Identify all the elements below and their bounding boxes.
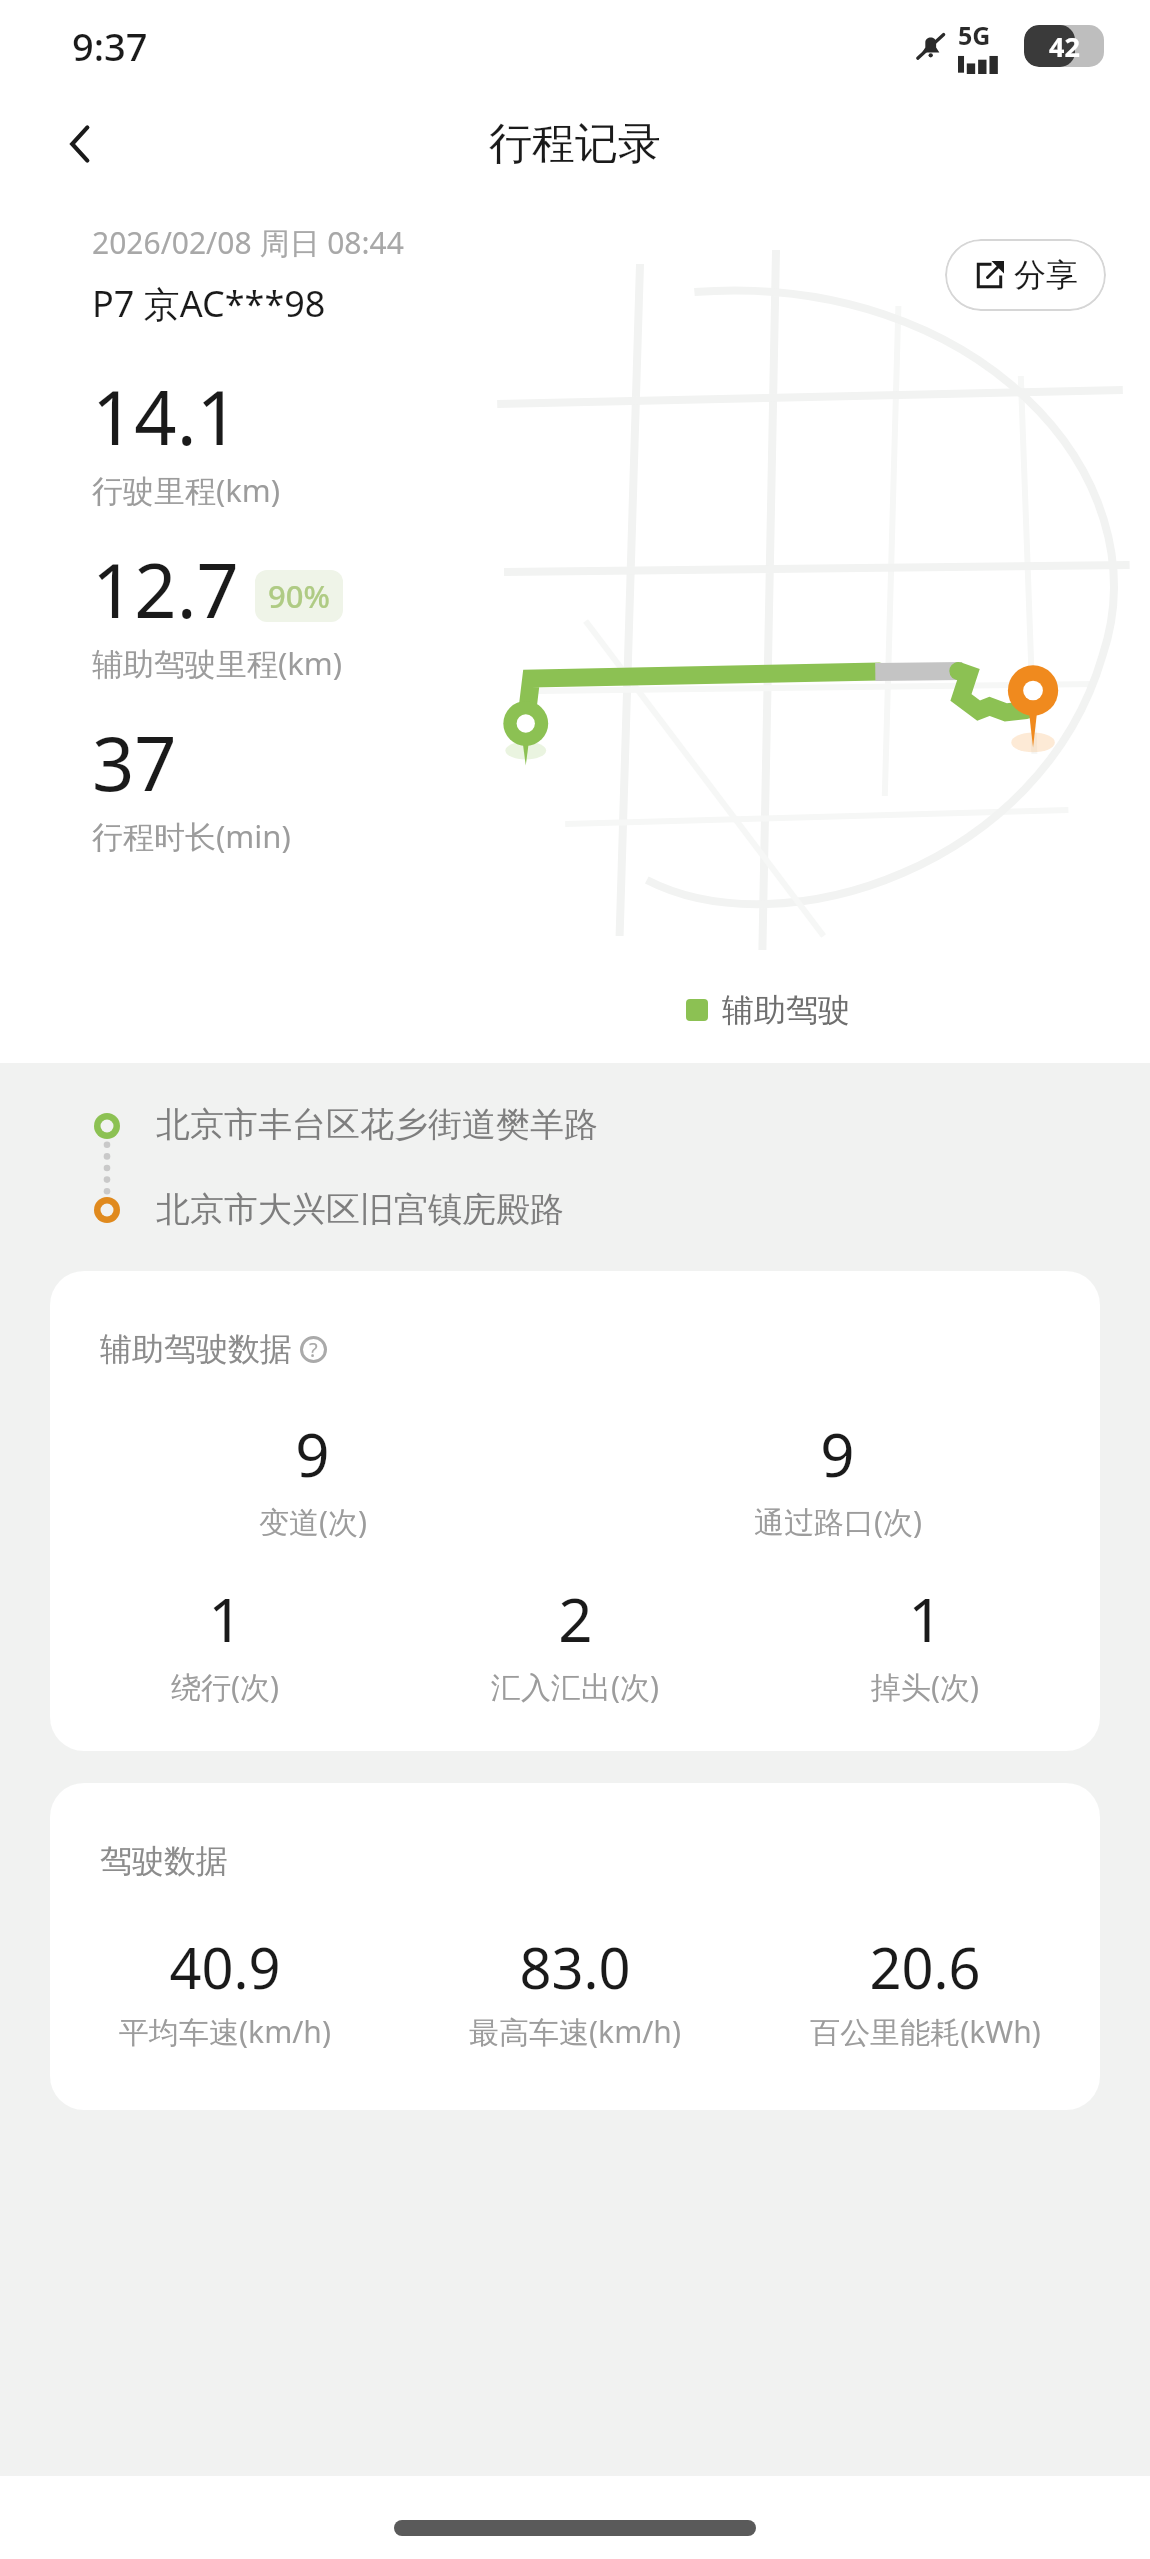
staticText: 83.0 xyxy=(519,1929,631,2005)
staticText: 1 xyxy=(208,1578,243,1660)
staticText: 2 xyxy=(558,1578,593,1660)
staticText: 行程记录 xyxy=(489,117,661,171)
staticText: 37 xyxy=(92,712,177,813)
staticText: 2026/02/08 周日 08:44 xyxy=(92,222,404,263)
staticText: 汇入汇出(次) xyxy=(491,1666,659,1707)
staticText: 变道(次) xyxy=(259,1501,367,1542)
staticText: 百公里能耗(kWh) xyxy=(810,2011,1041,2052)
staticText: 平均车速(km/h) xyxy=(119,2011,331,2052)
staticText: 行驶里程(km) xyxy=(92,469,281,511)
button[interactable]: Back xyxy=(38,102,122,186)
staticText: 驾驶数据 xyxy=(100,1841,228,1881)
staticText: 20.6 xyxy=(869,1929,981,2005)
staticText: 42 xyxy=(1049,28,1080,65)
staticText: 14.1 xyxy=(92,366,239,467)
staticText: 5G xyxy=(958,18,991,52)
staticText: 9:37 xyxy=(72,20,148,72)
staticText: P7 京AC***98 xyxy=(92,279,326,328)
staticText: 最高车速(km/h) xyxy=(469,2011,681,2052)
staticText: 1 xyxy=(908,1578,943,1660)
staticText: 9 xyxy=(820,1413,855,1495)
staticText: 辅助驾驶里程(km) xyxy=(92,642,343,684)
staticText: 辅助驾驶数据 xyxy=(100,1329,292,1369)
staticText: 90% xyxy=(268,575,330,617)
button[interactable]: 分享 xyxy=(945,239,1106,311)
staticText: 40.9 xyxy=(169,1929,281,2005)
staticText: 行程时长(min) xyxy=(92,815,291,857)
staticText: 辅助驾驶 xyxy=(722,990,850,1030)
staticText: 绕行(次) xyxy=(171,1666,279,1707)
staticText: 12.7 xyxy=(92,539,239,640)
staticText: 分享 xyxy=(1014,255,1078,295)
staticText: 9 xyxy=(295,1413,330,1495)
staticText: 北京市丰台区花乡街道樊羊路 xyxy=(156,1103,598,1146)
staticText: 掉头(次) xyxy=(871,1666,979,1707)
staticText: 北京市大兴区旧宫镇庑殿路 xyxy=(156,1188,564,1231)
staticText: 通过路口(次) xyxy=(754,1501,922,1542)
button[interactable]: Info xyxy=(298,1334,328,1364)
staticText: ? xyxy=(309,1336,318,1363)
